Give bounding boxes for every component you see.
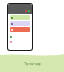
staticText: Try our app (24, 62, 41, 66)
button[interactable] (8, 39, 32, 44)
button[interactable] (10, 21, 30, 26)
button[interactable] (10, 15, 30, 20)
button[interactable] (8, 34, 32, 39)
button[interactable] (10, 27, 30, 32)
